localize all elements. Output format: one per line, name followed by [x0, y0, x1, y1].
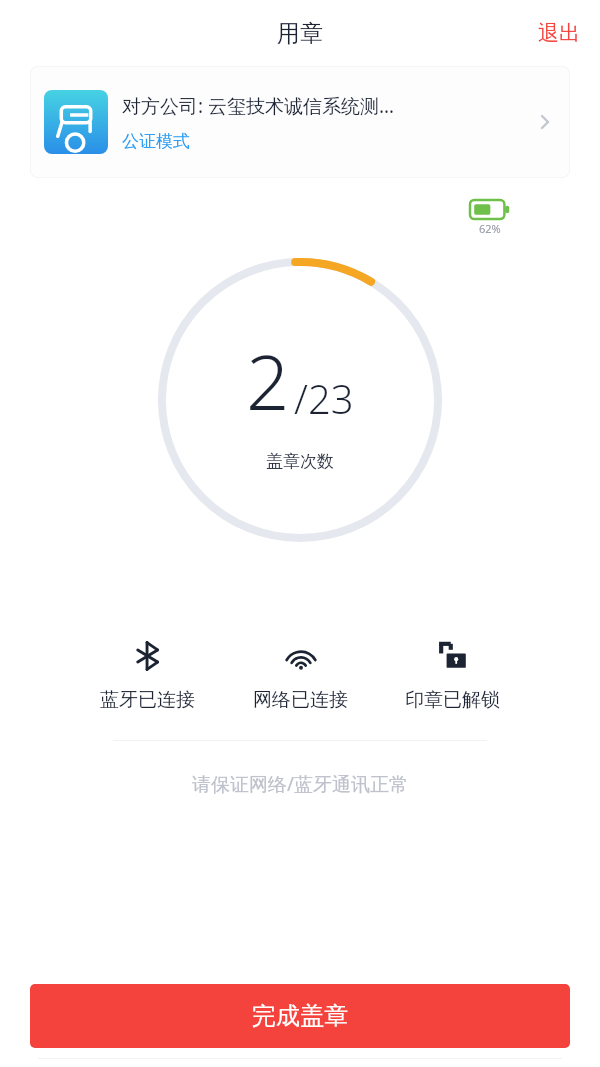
- other: 网络: [283, 638, 319, 674]
- other: 电量 62%: [470, 200, 510, 219]
- button[interactable]: 完成盖章: [30, 984, 570, 1048]
- button[interactable]: 退出: [518, 10, 600, 56]
- other: 印章已解锁: [437, 640, 469, 672]
- staticText: 蓝牙已连接: [100, 688, 195, 712]
- staticText: 完成盖章: [252, 1001, 348, 1031]
- staticText: 用章: [277, 19, 323, 48]
- other: 详情: [536, 112, 556, 132]
- staticText: 2: [246, 329, 290, 433]
- staticText: 盖章次数: [266, 451, 334, 472]
- staticText: 请保证网络/蓝牙通讯正常: [0, 771, 600, 797]
- staticText: 网络已连接: [253, 688, 348, 712]
- staticText: 对方公司: 云玺技术诚信系统测…: [122, 93, 395, 119]
- staticText: /23: [294, 371, 354, 425]
- staticText: 62%: [479, 221, 501, 236]
- button[interactable]: 对方公司: 云玺技术诚信系统测…: [30, 66, 570, 178]
- staticText: 退出: [538, 20, 580, 46]
- staticText: 印章已解锁: [405, 688, 500, 712]
- button[interactable]: 印章已解锁: [405, 636, 500, 712]
- button[interactable]: 蓝牙: [100, 636, 195, 712]
- button[interactable]: 网络: [253, 636, 348, 712]
- other: 蓝牙: [132, 640, 164, 672]
- staticText: 公证模式: [122, 131, 190, 152]
